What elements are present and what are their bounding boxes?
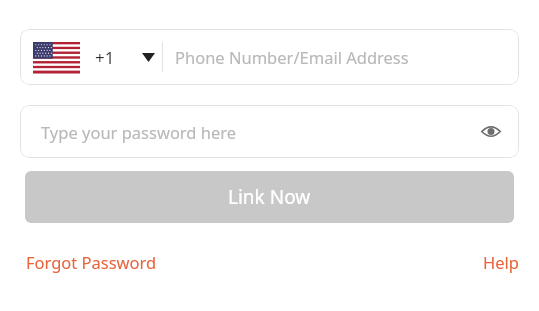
staticText: Link Now — [228, 184, 311, 210]
staticText: Help — [483, 251, 519, 273]
button[interactable]: Forgot Password — [26, 251, 157, 273]
staticText: +1 — [95, 46, 115, 69]
staticText: Forgot Password — [26, 251, 157, 273]
button[interactable]: Show password — [471, 105, 511, 158]
button[interactable]: Select country code — [33, 29, 162, 85]
button[interactable]: Help — [483, 251, 519, 273]
button[interactable]: Type your password here — [20, 105, 519, 158]
button[interactable]: Select country code — [20, 29, 519, 85]
staticText: Phone Number/Email Address — [175, 46, 409, 68]
staticText: Type your password here — [41, 121, 237, 143]
button[interactable]: Link Now — [25, 171, 514, 223]
